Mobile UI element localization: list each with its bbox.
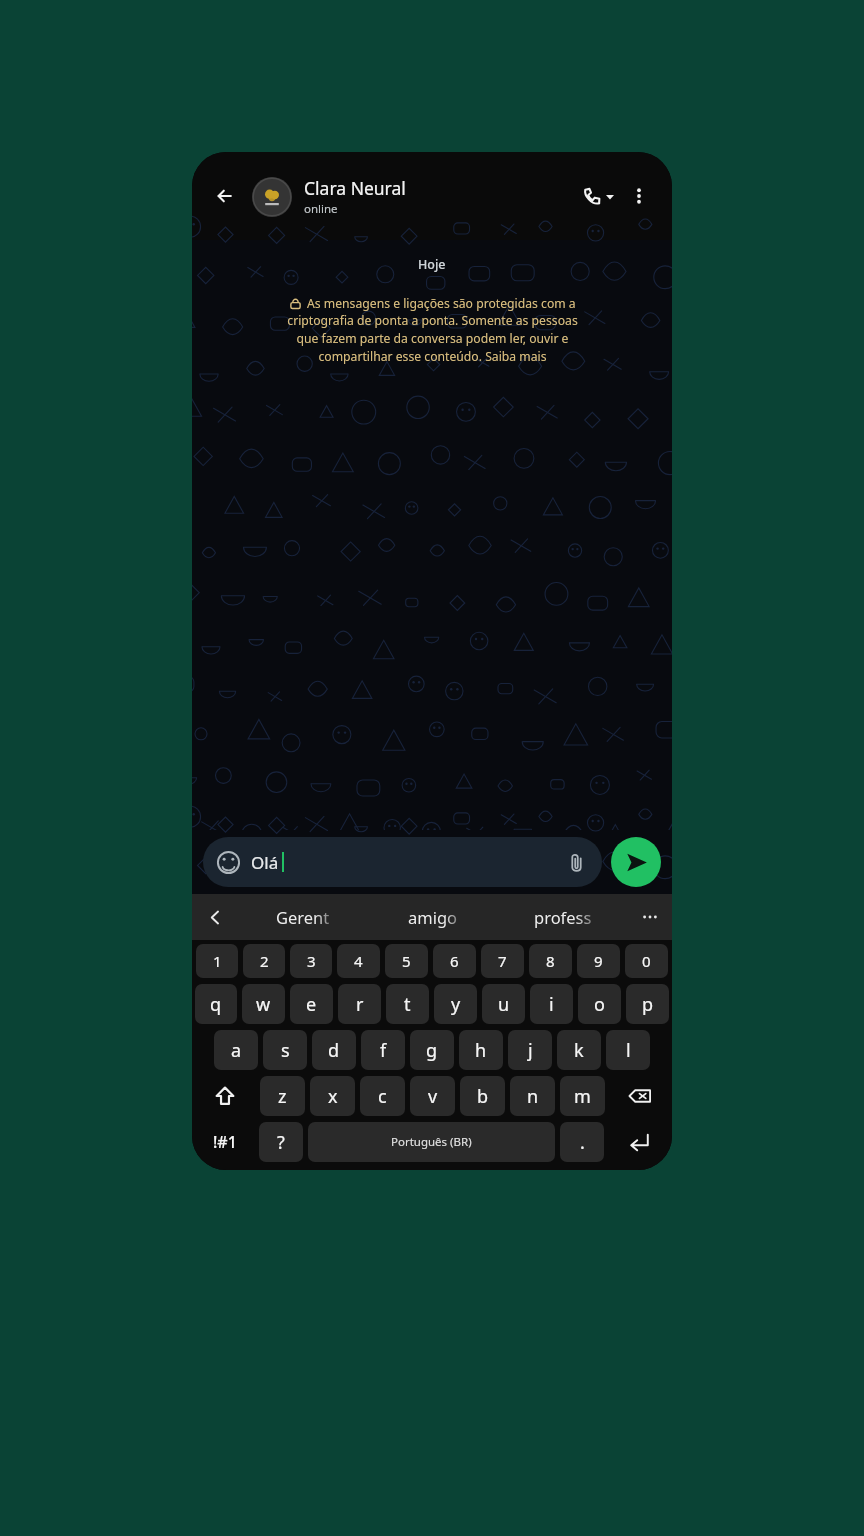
button[interactable]: a (214, 1030, 258, 1070)
button[interactable]: q (195, 984, 237, 1024)
button[interactable]: k (557, 1030, 601, 1070)
button[interactable]: Back (206, 176, 246, 216)
staticText: ? (277, 1130, 285, 1155)
button[interactable]: . (560, 1122, 604, 1162)
button[interactable]: Emoji (203, 837, 602, 887)
staticText: 3 (307, 951, 316, 971)
staticText: 5 (402, 951, 411, 971)
button[interactable]: f (361, 1030, 405, 1070)
button[interactable]: m (560, 1076, 605, 1116)
button[interactable]: l (606, 1030, 650, 1070)
button[interactable]: Attach (562, 848, 590, 876)
button[interactable]: 2 (243, 944, 285, 978)
staticText: s (281, 1038, 290, 1063)
button[interactable]: 3 (290, 944, 332, 978)
button[interactable]: 6 (433, 944, 476, 978)
button[interactable]: o (578, 984, 621, 1024)
staticText: criptografia de ponta a ponta. Somente a… (287, 312, 578, 365)
button[interactable]: p (626, 984, 669, 1024)
staticText: 6 (450, 951, 459, 971)
staticText: y (451, 992, 461, 1017)
button[interactable]: Português (BR) (308, 1122, 555, 1162)
button[interactable]: 7 (481, 944, 524, 978)
staticText: 7 (498, 951, 507, 971)
button[interactable]: 5 (385, 944, 428, 978)
staticText: i (549, 992, 554, 1017)
staticText: m (574, 1084, 591, 1109)
button[interactable]: Shift (195, 1076, 255, 1116)
staticText: . (580, 1130, 585, 1155)
button[interactable]: v (410, 1076, 455, 1116)
button[interactable]: x (310, 1076, 355, 1116)
button[interactable]: b (460, 1076, 505, 1116)
button[interactable]: s (263, 1030, 307, 1070)
staticText: 1 (213, 951, 222, 971)
staticText: p (642, 992, 654, 1017)
button[interactable]: amigo (368, 894, 498, 940)
staticText: 2 (260, 951, 269, 971)
button[interactable]: u (482, 984, 525, 1024)
button[interactable]: 8 (529, 944, 572, 978)
staticText: b (477, 1084, 489, 1109)
button[interactable]: y (434, 984, 477, 1024)
staticText: 8 (546, 951, 555, 971)
staticText: r (356, 992, 364, 1017)
staticText: w (256, 992, 271, 1017)
staticText: amigo (408, 906, 458, 928)
button[interactable]: Backspace (610, 1076, 669, 1116)
staticText: online (304, 201, 338, 217)
staticText: Hoje (418, 256, 446, 273)
button[interactable]: h (459, 1030, 503, 1070)
button[interactable]: Send (611, 837, 661, 887)
staticText: l (626, 1038, 631, 1063)
button[interactable]: Enter (609, 1122, 669, 1162)
button[interactable]: n (510, 1076, 555, 1116)
staticText: h (475, 1038, 487, 1063)
staticText: Português (BR) (391, 1134, 472, 1150)
staticText: j (528, 1038, 533, 1063)
button[interactable]: e (290, 984, 333, 1024)
staticText: q (210, 992, 222, 1017)
button[interactable]: d (312, 1030, 356, 1070)
button[interactable]: 9 (577, 944, 620, 978)
staticText: Clara Neural (304, 176, 406, 200)
button[interactable]: Call (576, 174, 620, 218)
staticText: Olá (251, 851, 279, 874)
staticText: f (380, 1038, 387, 1063)
button[interactable]: Previous suggestions (192, 894, 238, 940)
staticText: g (426, 1038, 438, 1063)
button[interactable]: i (530, 984, 573, 1024)
staticText: d (328, 1038, 340, 1063)
staticText: k (574, 1038, 584, 1063)
button[interactable]: c (360, 1076, 405, 1116)
staticText: a (231, 1038, 242, 1063)
button[interactable]: z (260, 1076, 305, 1116)
staticText: 4 (354, 951, 363, 971)
button[interactable]: More options (620, 177, 658, 215)
staticText: x (328, 1084, 338, 1109)
staticText: v (428, 1084, 438, 1109)
button[interactable]: w (242, 984, 285, 1024)
button[interactable]: Gerent (238, 894, 368, 940)
button[interactable]: !#1 (195, 1122, 254, 1162)
button[interactable]: profess (498, 894, 628, 940)
button[interactable]: 4 (337, 944, 380, 978)
button[interactable]: j (508, 1030, 552, 1070)
button[interactable]: t (386, 984, 429, 1024)
button[interactable]: ? (259, 1122, 303, 1162)
button[interactable]: Clara Neural (252, 176, 576, 217)
button[interactable]: More suggestions (628, 894, 672, 940)
button[interactable]: g (410, 1030, 454, 1070)
staticText: As mensagens e ligações são protegidas c… (307, 295, 576, 312)
staticText: Gerent (276, 906, 330, 928)
staticText: o (594, 992, 605, 1017)
staticText: profess (534, 906, 592, 928)
staticText: t (404, 992, 411, 1017)
staticText: u (498, 992, 510, 1017)
button[interactable]: 1 (196, 944, 238, 978)
staticText: e (306, 992, 317, 1017)
button[interactable]: Emoji (215, 849, 241, 875)
staticText: z (278, 1084, 287, 1109)
button[interactable]: r (338, 984, 381, 1024)
button[interactable]: 0 (625, 944, 668, 978)
